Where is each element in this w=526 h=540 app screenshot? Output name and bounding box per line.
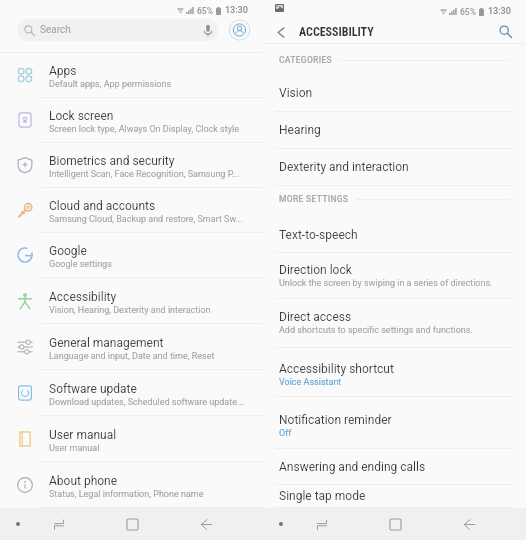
button[interactable]: Google (0, 233, 263, 277)
button[interactable]: Lock screen (0, 98, 263, 142)
staticText: Add shortcuts to specific settings and f… (279, 325, 473, 336)
staticText: 65% (197, 6, 213, 16)
staticText: Hearing (279, 123, 321, 137)
staticText: Dexterity and interaction (279, 160, 409, 174)
staticText: MORE SETTINGS (279, 194, 349, 204)
button[interactable]: Biometrics and security (0, 143, 263, 187)
button[interactable]: Accessibility shortcut (263, 348, 526, 396)
staticText: Biometrics and security (49, 154, 175, 168)
staticText: Direct access (279, 310, 352, 324)
button[interactable]: Single tap mode (263, 485, 526, 507)
staticText: Download updates, Scheduled software upd… (49, 397, 245, 408)
staticText: CATEGORIES (279, 55, 332, 65)
button[interactable]: Apps (0, 53, 263, 97)
staticText: General management (49, 336, 164, 350)
button[interactable]: Answering and ending calls (263, 449, 526, 484)
staticText: 13:30 (225, 5, 248, 16)
button[interactable]: Hearing (263, 112, 526, 148)
staticText: Lock screen (49, 109, 114, 123)
button[interactable]: Back (188, 508, 225, 540)
staticText: Software update (49, 382, 137, 396)
staticText: Google settings (49, 259, 112, 270)
staticText: Vision (279, 86, 313, 100)
button[interactable]: Vision (263, 75, 526, 111)
button[interactable]: Back (274, 21, 292, 43)
button[interactable]: Hide keyboard (0, 508, 35, 540)
staticText: Off (279, 428, 292, 439)
staticText: 65% (460, 7, 476, 17)
button[interactable]: User manual (0, 416, 263, 461)
button[interactable]: Direction lock (263, 253, 526, 298)
staticText: Apps (49, 64, 77, 78)
button[interactable]: Back (451, 508, 488, 540)
staticText: Answering and ending calls (279, 460, 426, 474)
button[interactable]: About phone (0, 462, 263, 507)
button[interactable]: Search (495, 21, 515, 41)
staticText: User manual (49, 443, 100, 454)
staticText: Accessibility shortcut (279, 362, 394, 376)
staticText: Cloud and accounts (49, 199, 156, 213)
staticText: Vision, Hearing, Dexterity and interacti… (49, 305, 211, 316)
staticText: Google (49, 244, 87, 258)
staticText: Samsung Cloud, Backup and restore, Smart… (49, 214, 243, 225)
button[interactable]: Dexterity and interaction (263, 149, 526, 185)
button[interactable]: Cloud and accounts (0, 188, 263, 232)
staticText: Single tap mode (279, 489, 366, 503)
staticText: Default apps, App permissions (49, 79, 172, 90)
button[interactable]: Accessibility (0, 278, 263, 323)
staticText: Search (40, 24, 71, 36)
button[interactable]: General management (0, 324, 263, 369)
button[interactable]: Hide keyboard (263, 508, 298, 540)
staticText: Voice Assistant (279, 377, 342, 388)
staticText: Intelligent Scan, Face Recognition, Sams… (49, 169, 240, 180)
button[interactable]: Text-to-speech (263, 217, 526, 252)
button[interactable]: Account (228, 19, 251, 41)
staticText: Language and input, Date and time, Reset (49, 351, 215, 362)
staticText: Direction lock (279, 263, 352, 277)
staticText: User manual (49, 428, 117, 442)
button[interactable]: Direct access (263, 299, 526, 347)
button[interactable]: Recent apps (303, 508, 340, 540)
staticText: Screen lock type, Always On Display, Clo… (49, 124, 239, 135)
staticText: 13:30 (488, 6, 511, 17)
staticText: Unlock the screen by swiping in a series… (279, 278, 493, 289)
staticText: ACCESSIBILITY (299, 25, 374, 39)
staticText: Notification reminder (279, 413, 392, 427)
button[interactable]: Home (377, 508, 414, 540)
button[interactable]: Search (17, 19, 218, 41)
button[interactable]: Notification reminder (263, 397, 526, 448)
staticText: About phone (49, 474, 118, 488)
staticText: Accessibility (49, 290, 117, 304)
button[interactable]: Software update (0, 370, 263, 415)
staticText: Text-to-speech (279, 228, 358, 242)
staticText: Status, Legal information, Phone name (49, 489, 204, 500)
button[interactable]: Recent apps (40, 508, 77, 540)
button[interactable]: Home (114, 508, 151, 540)
